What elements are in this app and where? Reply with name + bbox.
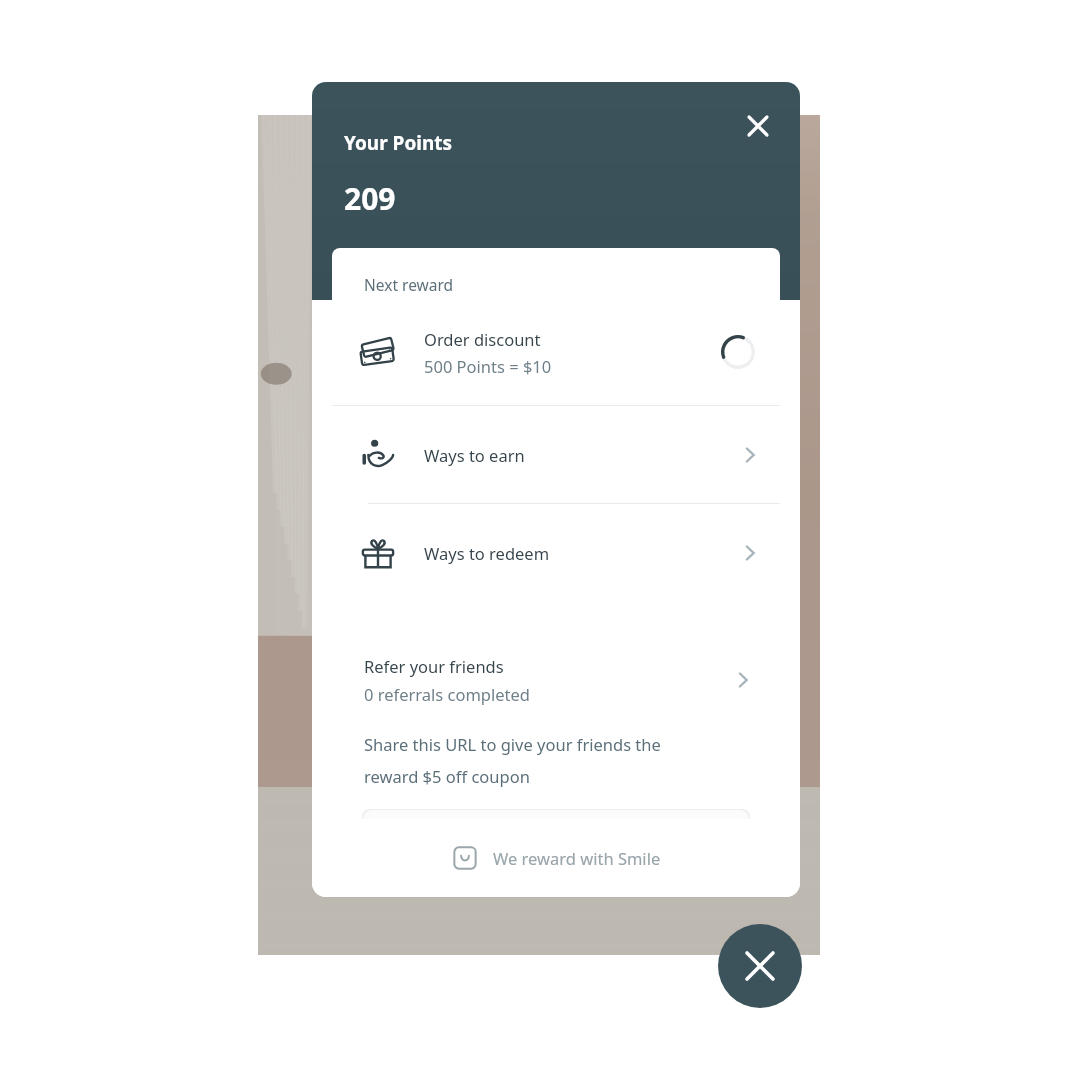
button[interactable]: Refer your friends	[364, 655, 756, 705]
button[interactable]: Ways to redeem	[332, 504, 780, 601]
staticText: Ways to redeem	[424, 542, 550, 564]
button[interactable]: Order discount	[332, 311, 780, 393]
button[interactable]: Close rewards	[718, 924, 802, 1008]
button[interactable]: Close	[738, 106, 778, 146]
staticText: 209	[344, 178, 396, 219]
staticText: Next reward	[364, 274, 454, 295]
staticText: We reward with Smile	[493, 847, 661, 869]
staticText: Your Points	[344, 130, 453, 156]
staticText: 0 referrals completed	[364, 683, 530, 705]
staticText: Order discount	[424, 328, 541, 350]
button[interactable]	[362, 809, 750, 859]
button[interactable]: Ways to earn	[332, 406, 780, 503]
staticText: Refer your friends	[364, 655, 504, 677]
staticText: 500 Points = $10	[424, 355, 552, 377]
staticText: reward $5 off coupon	[364, 765, 530, 787]
button[interactable]: We reward with Smile	[451, 844, 661, 872]
staticText: Share this URL to give your friends the	[364, 733, 661, 755]
staticText: Ways to earn	[424, 444, 525, 466]
